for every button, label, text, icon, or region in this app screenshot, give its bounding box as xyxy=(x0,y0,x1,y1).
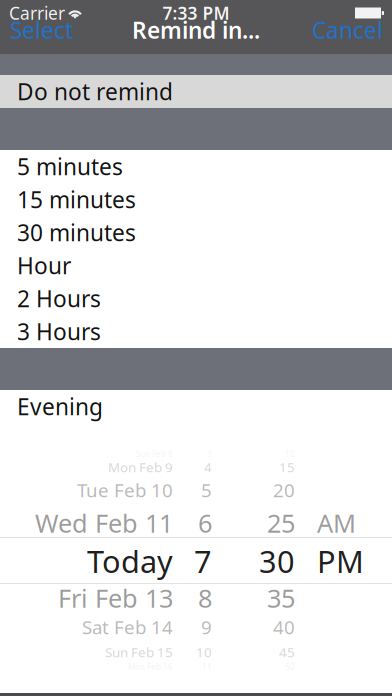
staticText: Today xyxy=(87,541,173,581)
staticText: 10 xyxy=(196,643,212,661)
staticText: 4 xyxy=(204,458,212,476)
staticText: 5 xyxy=(201,478,212,502)
staticText: 15 xyxy=(279,458,295,476)
staticText: Do not remind xyxy=(17,76,173,106)
staticText: Mon Feb 16 xyxy=(128,662,173,672)
staticText: Mon Feb 9 xyxy=(108,458,173,476)
button[interactable]: Do not remind xyxy=(0,75,392,108)
staticText: Tue Feb 10 xyxy=(77,478,173,502)
staticText: Remind in... xyxy=(132,15,260,45)
staticText: 15 minutes xyxy=(17,184,136,214)
staticText: Sun Feb 8 xyxy=(136,449,173,459)
button[interactable]: 15 minutes xyxy=(0,183,392,216)
staticText: 40 xyxy=(273,615,295,639)
button[interactable]: Select xyxy=(0,14,82,46)
staticText: 9 xyxy=(201,615,212,639)
button[interactable]: 5 minutes xyxy=(0,150,392,183)
staticText: 3 Hours xyxy=(17,316,101,346)
button[interactable]: 3 Hours xyxy=(0,315,392,348)
staticText: 7:33 PM xyxy=(162,1,229,24)
staticText: 50 xyxy=(285,662,295,672)
staticText: PM xyxy=(317,541,364,581)
button[interactable]: Hour xyxy=(0,249,392,282)
staticText: Fri Feb 13 xyxy=(58,581,173,615)
staticText: Carrier xyxy=(9,1,65,24)
button[interactable]: 2 Hours xyxy=(0,282,392,315)
staticText: Select xyxy=(10,15,73,45)
staticText: Cancel xyxy=(312,15,383,45)
staticText: 3 xyxy=(207,449,212,459)
staticText: 8 xyxy=(198,581,212,615)
staticText: 10 xyxy=(285,449,295,459)
staticText: 6 xyxy=(198,506,212,540)
button[interactable]: 30 minutes xyxy=(0,216,392,249)
staticText: AM xyxy=(317,506,356,540)
button[interactable]: Cancel xyxy=(303,14,392,46)
staticText: Hour xyxy=(17,250,71,280)
staticText: 30 xyxy=(259,541,295,581)
staticText: 11 xyxy=(202,662,212,672)
staticText: Evening xyxy=(17,391,103,421)
staticText: 20 xyxy=(273,478,295,502)
staticText: 5 minutes xyxy=(17,151,123,181)
staticText: Wed Feb 11 xyxy=(35,506,173,540)
staticText: Sat Feb 14 xyxy=(82,615,173,639)
staticText: 7 xyxy=(194,541,212,581)
staticText: 35 xyxy=(267,581,295,615)
staticText: 45 xyxy=(279,643,295,661)
staticText: 2 Hours xyxy=(17,283,101,313)
staticText: 25 xyxy=(267,506,295,540)
button[interactable]: Evening xyxy=(0,390,392,423)
staticText: 30 minutes xyxy=(17,217,136,247)
staticText: Sun Feb 15 xyxy=(105,643,173,661)
